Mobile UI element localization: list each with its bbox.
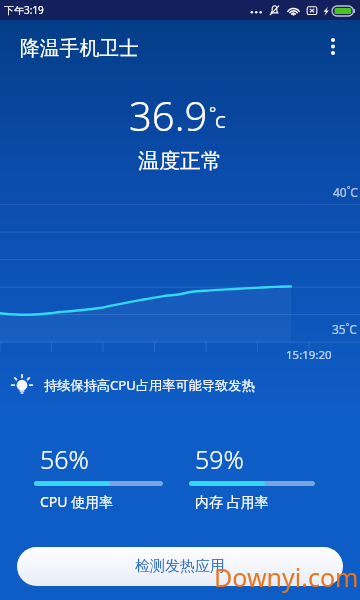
staticText: ° xyxy=(209,101,217,124)
staticText: 内存 占用率 xyxy=(195,492,269,511)
button[interactable]: 56% xyxy=(34,444,163,514)
staticText: 温度正常 xyxy=(138,148,222,174)
button[interactable]: 检测发热应用 xyxy=(17,547,343,586)
staticText: 降温手机卫士 xyxy=(20,36,139,61)
staticText: 40˚C xyxy=(333,184,358,200)
staticText: 59% xyxy=(195,442,244,476)
staticText: C xyxy=(215,110,226,133)
staticText: 56% xyxy=(40,442,89,476)
staticText: 下午3:19 xyxy=(4,3,44,17)
button[interactable]: More options xyxy=(304,20,360,76)
staticText: Downyi.com xyxy=(214,560,359,594)
staticText: 36.9 xyxy=(129,88,208,142)
staticText: 检测发热应用 xyxy=(135,557,225,576)
staticText: 持续保持高CPU占用率可能导致发热 xyxy=(44,376,255,394)
button[interactable]: 59% xyxy=(189,444,315,514)
staticText: CPU 使用率 xyxy=(40,492,114,511)
staticText: 15:19:20 xyxy=(286,347,332,363)
staticText: 35˚C xyxy=(332,321,357,337)
